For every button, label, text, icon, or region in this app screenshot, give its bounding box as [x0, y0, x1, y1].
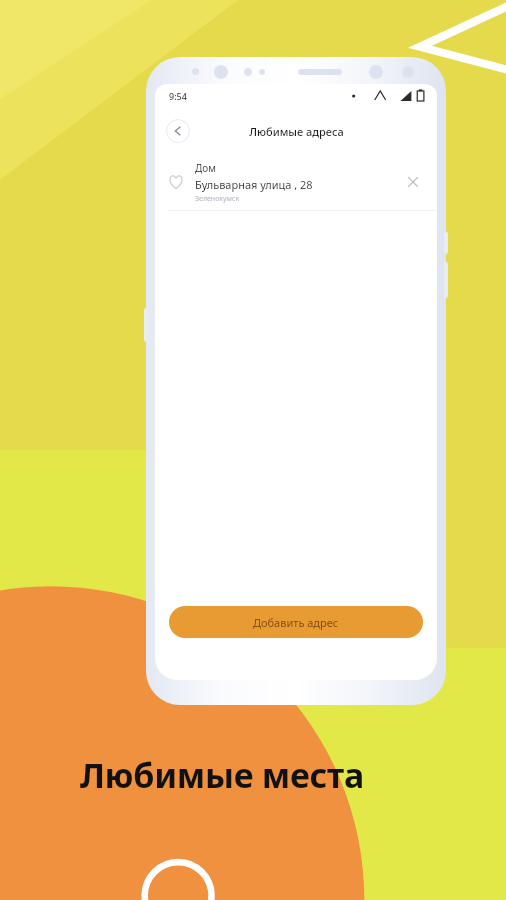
button[interactable]: Добавить адрес	[169, 606, 423, 638]
button[interactable]: Дом	[155, 154, 437, 210]
staticText: Бульварная улица , 28	[195, 177, 313, 192]
staticText: 9:54	[169, 90, 187, 102]
staticText: Добавить адрес	[253, 615, 339, 630]
button[interactable]: Удалить адрес	[403, 172, 423, 192]
staticText: Любимые места	[80, 752, 364, 798]
staticText: Зеленокумск	[195, 194, 240, 204]
staticText: Любимые адреса	[249, 124, 344, 139]
button[interactable]: Назад	[166, 119, 190, 143]
staticText: Дом	[195, 161, 216, 175]
